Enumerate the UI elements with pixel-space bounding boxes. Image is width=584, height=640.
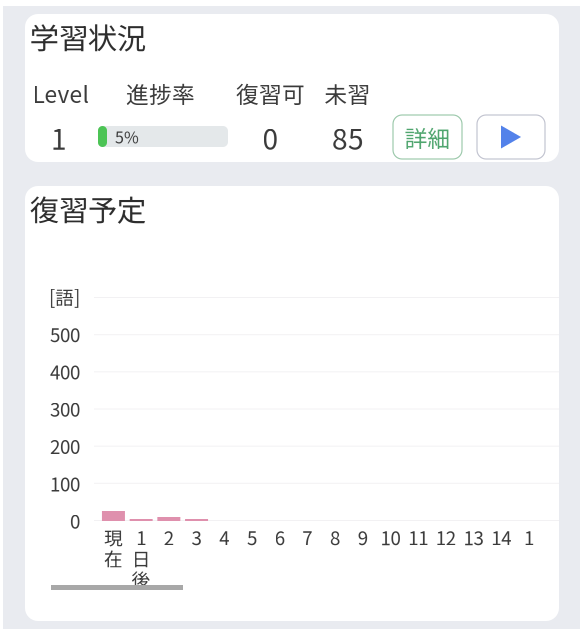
staticText: 5% — [115, 125, 139, 148]
staticText: 学習状況 — [30, 15, 146, 58]
staticText: 300 — [50, 395, 80, 422]
staticText: 100 — [50, 470, 80, 497]
staticText: 現 — [104, 523, 123, 550]
staticText: 詳細 — [404, 121, 450, 153]
staticText: 1 — [524, 523, 534, 550]
staticText: 7 — [302, 523, 312, 550]
staticText: 12 — [436, 523, 456, 550]
staticText: 0 — [70, 507, 80, 534]
staticText: 1 — [136, 523, 146, 550]
staticText: 4 — [219, 523, 229, 550]
staticText: 2 — [164, 523, 174, 550]
staticText: 13 — [463, 523, 483, 550]
staticText: 5 — [247, 523, 257, 550]
staticText: 3 — [191, 523, 201, 550]
staticText: 後 — [132, 565, 151, 592]
button[interactable]: 再生 — [477, 115, 545, 159]
staticText: 復習予定 — [30, 187, 146, 230]
staticText: 0 — [262, 117, 278, 158]
staticText: 400 — [50, 358, 80, 385]
staticText: 11 — [408, 523, 428, 550]
staticText: 85 — [332, 117, 364, 158]
staticText: 進捗率 — [126, 77, 195, 109]
staticText: 在 — [104, 544, 123, 571]
staticText: 1 — [51, 117, 67, 158]
staticText: 8 — [330, 523, 340, 550]
staticText: 10 — [380, 523, 400, 550]
staticText: 9 — [358, 523, 368, 550]
staticText: 復習可 — [236, 77, 305, 109]
staticText: 14 — [491, 523, 511, 550]
staticText: [語] — [49, 283, 80, 310]
staticText: Level — [32, 77, 88, 109]
button[interactable]: 詳細 — [393, 115, 462, 159]
staticText: 500 — [50, 320, 80, 347]
staticText: 日 — [132, 544, 151, 571]
staticText: 未習 — [324, 77, 370, 109]
staticText: 200 — [50, 432, 80, 459]
staticText: 6 — [275, 523, 285, 550]
